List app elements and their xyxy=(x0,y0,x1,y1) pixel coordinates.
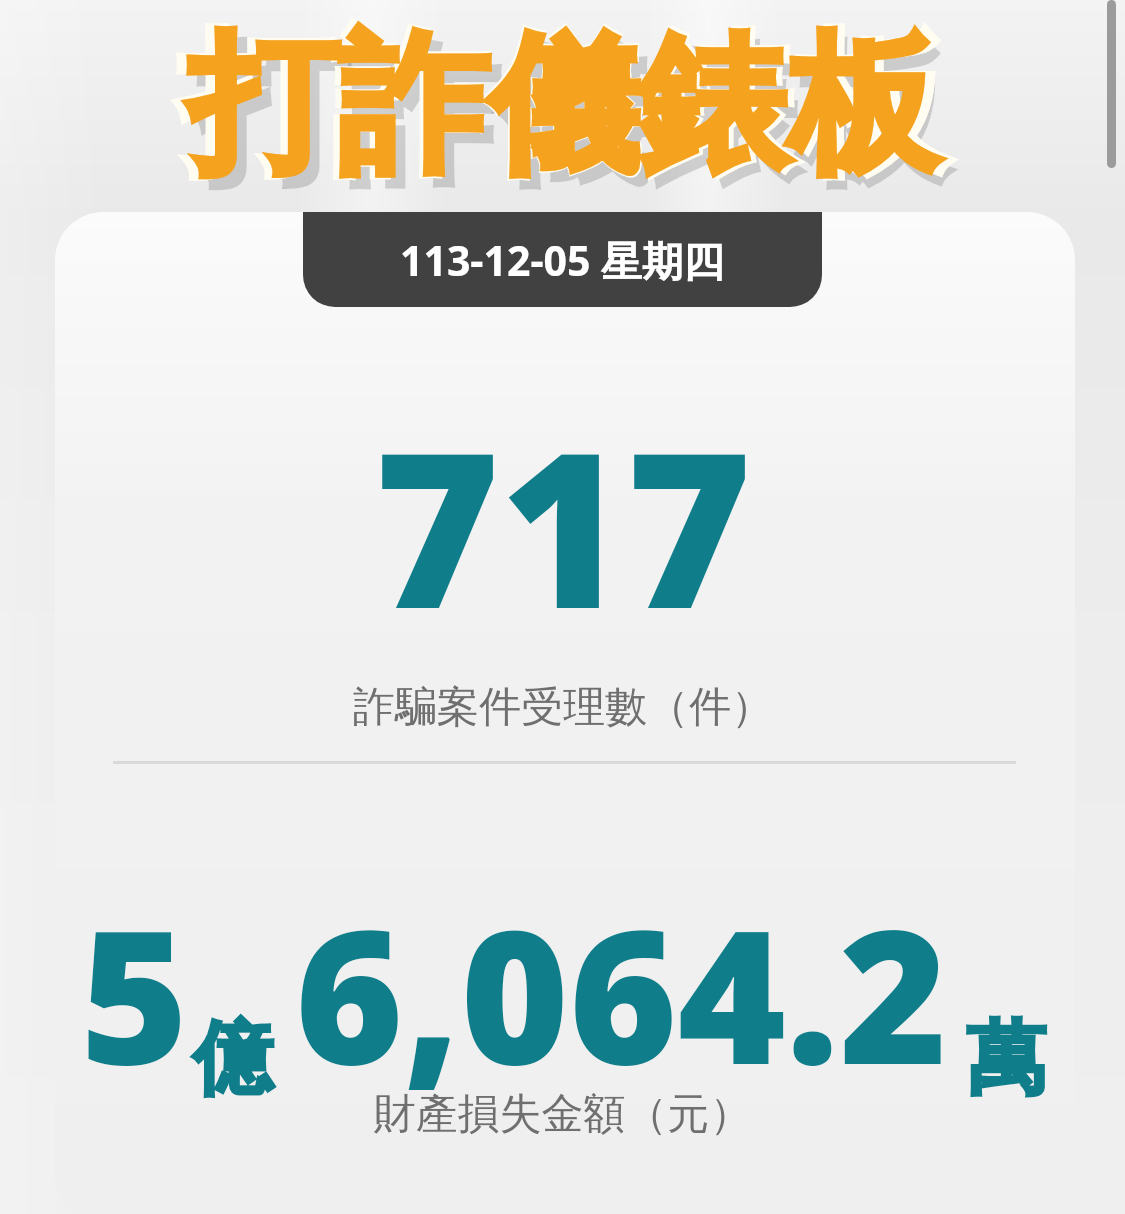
staticText: 6,064.2 xyxy=(295,866,948,1118)
staticText: 5 xyxy=(80,866,189,1118)
other: Scroll position xyxy=(1107,0,1116,168)
staticText: 打詐儀錶板 xyxy=(188,12,938,201)
staticText: 717 xyxy=(374,378,752,671)
staticText: 萬 xyxy=(966,1009,1046,1110)
staticText: 113-12-05 星期四 xyxy=(400,232,725,288)
staticText: 打詐儀錶板 xyxy=(198,23,948,212)
staticText: 億 xyxy=(193,1009,273,1110)
staticText: 打詐儀錶板 xyxy=(178,9,948,203)
staticText: 詐騙案件受理數（件） xyxy=(353,681,773,734)
button[interactable]: 113-12-05 星期四 xyxy=(303,212,822,307)
staticText: 財產損失金額（元） xyxy=(0,1088,1125,1141)
